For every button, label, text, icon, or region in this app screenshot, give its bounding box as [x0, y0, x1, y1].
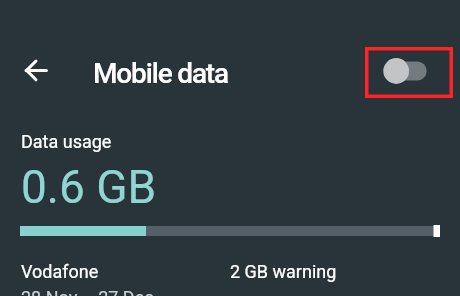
- staticText: 28 Nov – 27 Dec: [21, 287, 154, 296]
- staticText: 0.6 GB: [21, 160, 157, 214]
- staticText: Vodafone: [21, 261, 99, 282]
- button[interactable]: Navigate up: [14, 48, 58, 92]
- staticText: Mobile data: [93, 57, 228, 90]
- staticText: Data usage: [21, 131, 112, 152]
- staticText: 2 GB warning: [230, 261, 337, 282]
- button[interactable]: Mobile data switch, off: [365, 47, 453, 98]
- button[interactable]: Data usage: [0, 118, 460, 296]
